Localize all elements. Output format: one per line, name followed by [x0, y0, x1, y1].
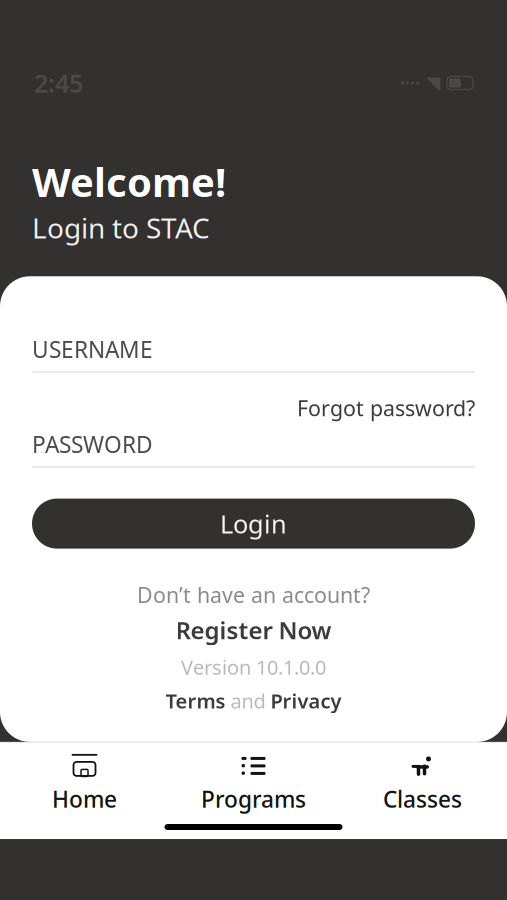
staticText: PASSWORD	[32, 429, 153, 459]
staticText: Login	[220, 507, 287, 540]
staticText: Register Now	[175, 614, 331, 646]
staticText: Classes	[383, 784, 462, 814]
staticText: Privacy	[270, 687, 341, 714]
button[interactable]: Terms	[165, 687, 225, 714]
button[interactable]: Privacy	[270, 687, 341, 714]
button[interactable]: Forgot password?	[32, 373, 475, 431]
staticText: and	[230, 687, 265, 714]
staticText: Terms	[165, 687, 225, 714]
staticText: USERNAME	[32, 334, 153, 364]
button[interactable]: Register Now	[175, 609, 331, 646]
staticText: Welcome!	[32, 155, 226, 208]
button[interactable]: Login	[32, 499, 475, 549]
staticText: Login to STAC	[32, 209, 210, 246]
button[interactable]: Home	[0, 743, 169, 818]
button[interactable]: Classes	[338, 743, 507, 818]
staticText: Forgot password?	[297, 394, 475, 422]
button[interactable]: Programs	[169, 743, 338, 818]
staticText: ◥	[426, 72, 440, 94]
staticText: Home	[52, 784, 117, 814]
staticText: Programs	[201, 784, 306, 814]
staticText: 2:45	[34, 66, 83, 100]
staticText: Don’t have an account?	[137, 581, 370, 609]
staticText: Version 10.1.0.0	[181, 654, 326, 680]
